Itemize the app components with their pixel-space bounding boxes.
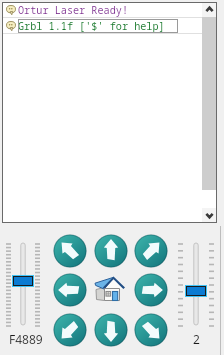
button[interactable]: Move up right [134,234,168,268]
button[interactable]: Move down left [53,313,87,347]
staticText: Grbl 1.1f ['$' for help] [18,19,165,33]
button[interactable]: Move left [53,273,87,307]
button[interactable]: Scroll down [202,208,217,223]
staticText: 2 [193,331,200,347]
button[interactable]: Move up left [53,234,87,268]
button[interactable]: Home [94,273,128,307]
button[interactable]: Speed [179,239,213,329]
button[interactable]: Move up [94,234,128,268]
button[interactable]: Power [6,239,40,329]
staticText: F4889 [9,331,43,347]
button[interactable]: Move right [134,273,168,307]
button[interactable]: Scroll up [202,2,217,17]
button[interactable]: Move down [94,313,128,347]
button[interactable]: Ortur Laser Ready! [2,2,217,17]
button[interactable]: Move down right [134,313,168,347]
staticText: Ortur Laser Ready! [18,3,129,17]
button[interactable]: Grbl 1.1f ['$' for help] [2,18,217,33]
